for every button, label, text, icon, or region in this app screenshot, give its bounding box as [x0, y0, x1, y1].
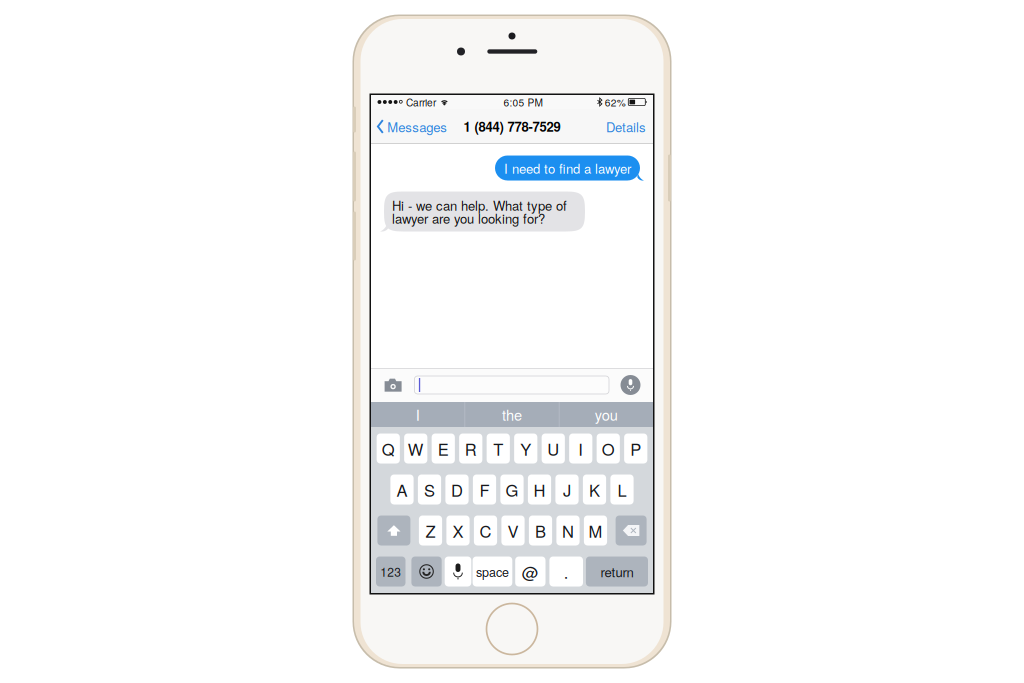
- staticText: Messages: [387, 117, 447, 136]
- button[interactable]: D: [445, 474, 469, 504]
- staticText: lawyer are you looking for?: [392, 209, 545, 227]
- staticText: Details: [606, 117, 646, 136]
- button[interactable]: Shift: [377, 515, 410, 545]
- staticText: K: [589, 478, 600, 501]
- button[interactable]: L: [610, 474, 634, 504]
- button[interactable]: I: [371, 402, 464, 427]
- staticText: N: [562, 519, 574, 542]
- button[interactable]: Y: [514, 433, 537, 463]
- staticText: D: [451, 478, 463, 501]
- staticText: R: [465, 437, 477, 460]
- button[interactable]: the: [465, 402, 559, 427]
- button[interactable]: M: [584, 515, 607, 545]
- staticText: W: [408, 437, 424, 460]
- staticText: .: [564, 560, 569, 583]
- button[interactable]: B: [529, 515, 552, 545]
- staticText: I: [578, 437, 583, 460]
- button[interactable]: W: [404, 433, 427, 463]
- button[interactable]: Details: [601, 109, 653, 144]
- staticText: C: [479, 519, 491, 542]
- button[interactable]: O: [597, 433, 620, 463]
- button[interactable]: R: [459, 433, 482, 463]
- button[interactable]: space: [473, 556, 512, 586]
- staticText: U: [547, 437, 559, 460]
- button[interactable]: Delete: [616, 515, 647, 545]
- staticText: space: [476, 562, 509, 580]
- staticText: H: [533, 478, 545, 501]
- staticText: V: [507, 519, 518, 542]
- staticText: X: [452, 519, 463, 542]
- button[interactable]: K: [583, 474, 606, 504]
- button[interactable]: E: [432, 433, 455, 463]
- button[interactable]: P: [624, 433, 647, 463]
- staticText: A: [396, 478, 407, 501]
- button[interactable]: T: [487, 433, 510, 463]
- staticText: @: [522, 560, 539, 583]
- button[interactable]: J: [555, 474, 579, 504]
- button[interactable]: N: [556, 515, 580, 545]
- button[interactable]: A: [390, 474, 414, 504]
- button[interactable]: 123: [376, 556, 405, 586]
- button[interactable]: Dictation: [445, 556, 471, 586]
- staticText: G: [505, 478, 518, 501]
- button[interactable]: Camera: [384, 375, 403, 395]
- staticText: you: [595, 404, 618, 425]
- staticText: M: [588, 519, 602, 542]
- button[interactable]: Messages: [371, 109, 452, 144]
- button[interactable]: G: [500, 474, 524, 504]
- staticText: Y: [520, 437, 531, 460]
- button[interactable]: Dictate: [620, 374, 641, 395]
- button[interactable]: V: [501, 515, 525, 545]
- button[interactable]: H: [528, 474, 551, 504]
- staticText: Z: [425, 519, 435, 542]
- staticText: F: [479, 478, 489, 501]
- button[interactable]: Z: [419, 515, 442, 545]
- button[interactable]: I: [569, 433, 592, 463]
- staticText: Q: [382, 437, 395, 460]
- button[interactable]: .: [549, 556, 583, 586]
- staticText: I need to find a lawyer: [504, 159, 631, 177]
- staticText: 123: [380, 563, 401, 580]
- staticText: return: [600, 562, 633, 581]
- staticText: 1 (844) 778-7529: [463, 117, 560, 136]
- button[interactable]: F: [473, 474, 496, 504]
- staticText: Hi - we can help. What type of: [392, 196, 567, 214]
- button[interactable]: U: [542, 433, 565, 463]
- staticText: 62%: [605, 95, 626, 109]
- staticText: I: [416, 404, 420, 425]
- staticText: P: [630, 437, 641, 460]
- staticText: E: [438, 437, 449, 460]
- button[interactable]: X: [446, 515, 470, 545]
- staticText: the: [502, 404, 522, 425]
- staticText: L: [617, 478, 626, 501]
- staticText: T: [493, 437, 503, 460]
- button[interactable]: @: [515, 556, 545, 586]
- staticText: Carrier: [406, 95, 436, 109]
- button[interactable]: S: [418, 474, 441, 504]
- staticText: O: [602, 437, 615, 460]
- button[interactable]: you: [559, 402, 653, 427]
- staticText: 6:05 PM: [503, 95, 542, 109]
- staticText: S: [424, 478, 435, 501]
- staticText: J: [563, 478, 571, 501]
- button[interactable]: return: [586, 556, 648, 586]
- staticText: B: [535, 519, 546, 542]
- button[interactable]: Emoji: [411, 556, 442, 586]
- button[interactable]: Q: [377, 433, 400, 463]
- button[interactable]: C: [474, 515, 497, 545]
